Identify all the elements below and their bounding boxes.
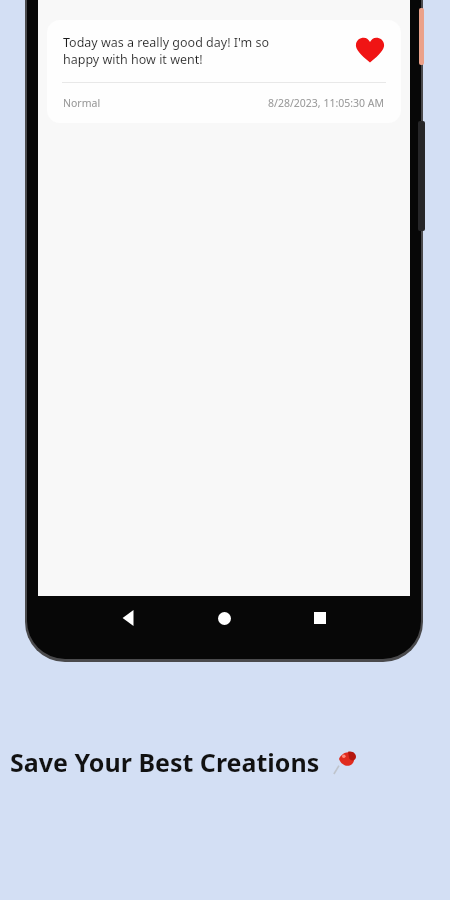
staticText: Normal [63, 96, 101, 110]
button[interactable]: Back [81, 598, 177, 638]
button[interactable]: Favorite [353, 34, 387, 68]
staticText: Today was a really good day! I'm so happ… [63, 34, 269, 68]
button[interactable]: Today was a really good day! I'm so happ… [47, 20, 401, 123]
staticText: 8/28/2023, 11:05:30 AM [268, 96, 385, 110]
button[interactable]: Home [177, 598, 272, 638]
button[interactable]: Recent apps [272, 598, 367, 638]
staticText: Save Your Best Creations [10, 745, 320, 779]
